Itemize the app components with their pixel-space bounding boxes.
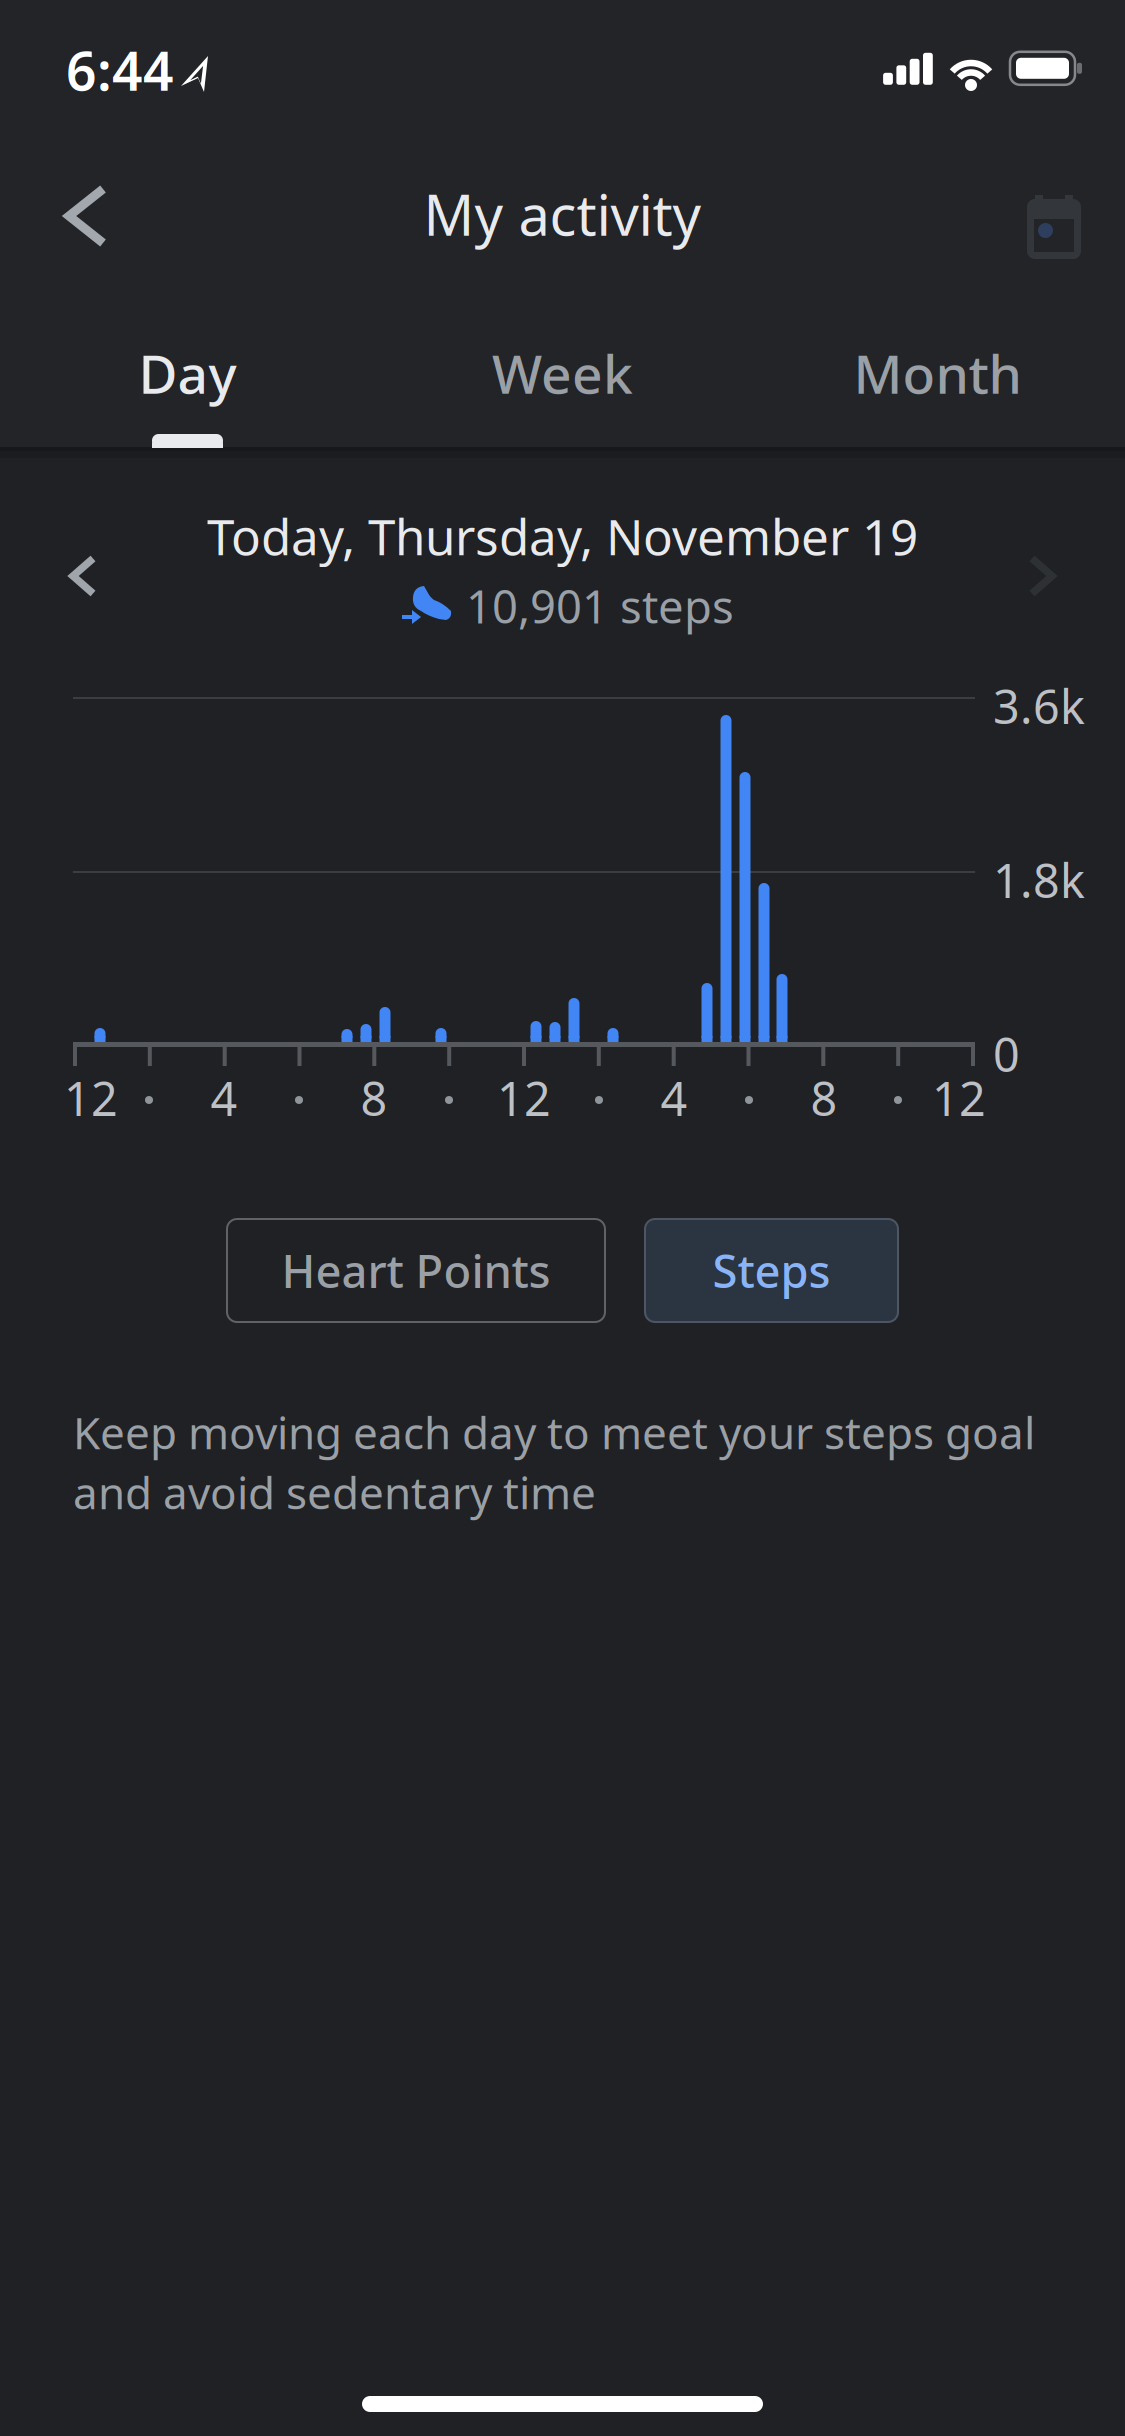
staticText: Keep moving each day to meet your steps …	[73, 1403, 1035, 1461]
staticText: Month	[853, 338, 1021, 408]
button[interactable]: Heart Points	[227, 1219, 605, 1322]
staticText: 8	[810, 1067, 837, 1129]
staticText: Day	[138, 338, 236, 408]
staticText: Today, Thursday, November 19	[207, 503, 918, 569]
staticText: 0	[993, 1023, 1020, 1085]
staticText: My activity	[423, 177, 701, 251]
button[interactable]: Day	[0, 315, 375, 430]
staticText: 12	[497, 1067, 551, 1129]
staticText: Steps	[712, 1240, 830, 1301]
button[interactable]: Previous day	[48, 536, 118, 616]
button[interactable]: Back	[46, 171, 126, 261]
staticText: 4	[660, 1067, 687, 1129]
staticText: 6:44	[66, 35, 174, 105]
button[interactable]: Month	[750, 315, 1125, 430]
button[interactable]: Next day	[1007, 536, 1077, 616]
staticText: 4	[210, 1067, 237, 1129]
button[interactable]: Choose date	[1001, 167, 1081, 257]
staticText: 8	[360, 1067, 387, 1129]
staticText: 10,901 steps	[466, 576, 734, 636]
staticText: and avoid sedentary time	[73, 1463, 596, 1521]
button[interactable]: Steps	[645, 1219, 898, 1322]
staticText: Week	[492, 338, 633, 408]
staticText: 12	[932, 1067, 986, 1129]
staticText: 1.8k	[993, 849, 1085, 911]
staticText: 3.6k	[993, 675, 1085, 737]
staticText: 12	[64, 1067, 118, 1129]
button[interactable]: Week	[375, 315, 750, 430]
staticText: Heart Points	[281, 1240, 550, 1301]
